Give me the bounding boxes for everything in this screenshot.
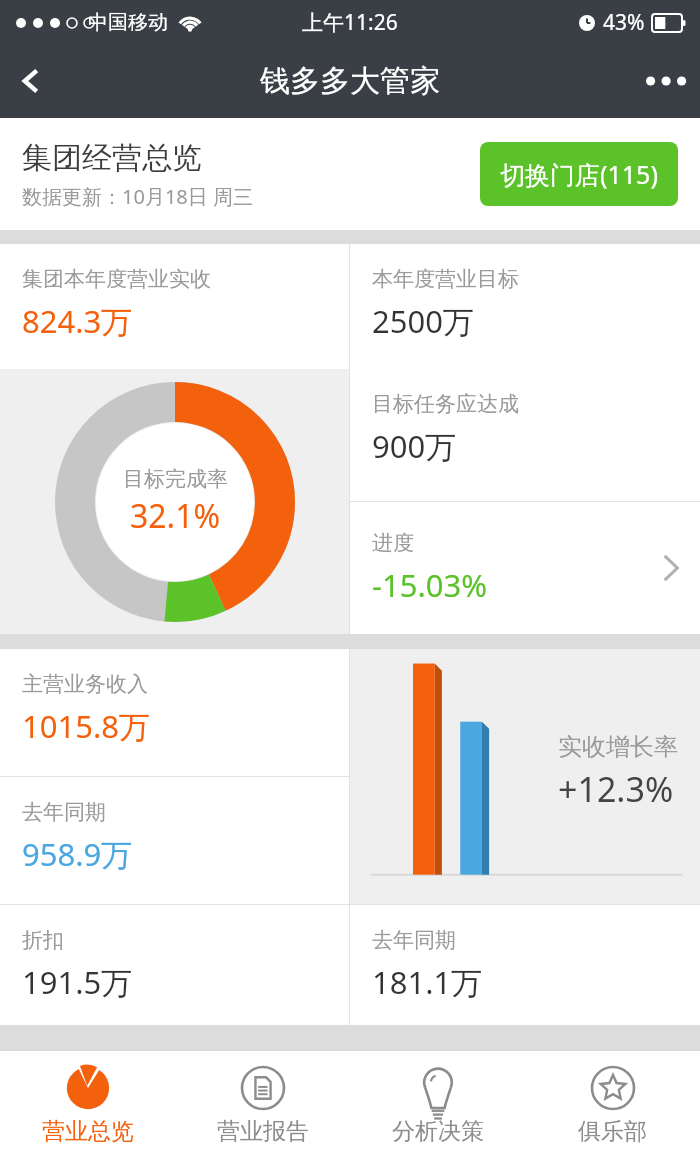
staticText: 进度 <box>372 530 414 556</box>
staticText: 32.1% <box>130 494 221 538</box>
staticText: 上午11:26 <box>302 8 398 37</box>
button[interactable]: 去年同期 <box>0 777 349 904</box>
staticText: 切换门店(115) <box>500 157 658 191</box>
staticText: 数据更新：10月18日 周三 <box>22 183 253 210</box>
staticText: 191.5万 <box>22 961 133 1003</box>
staticText: 181.1万 <box>372 961 483 1003</box>
staticText: 去年同期 <box>22 799 106 825</box>
staticText: 1015.8万 <box>22 705 150 747</box>
staticText: 824.3万 <box>22 300 133 342</box>
button[interactable]: 折扣 <box>0 905 349 1025</box>
staticText: 中国移动 <box>88 10 168 35</box>
button[interactable]: 营业报告 <box>175 1051 350 1163</box>
button[interactable]: 实收增长率 <box>350 649 700 904</box>
button[interactable]: Back <box>0 50 62 112</box>
staticText: 营业总览 <box>42 1117 134 1146</box>
staticText: 主营业务收入 <box>22 671 148 697</box>
staticText: 目标任务应达成 <box>372 391 519 417</box>
button[interactable]: 分析决策 <box>350 1051 525 1163</box>
staticText: +12.3% <box>558 766 674 812</box>
staticText: 900万 <box>372 425 457 467</box>
button[interactable]: 本年度营业目标 <box>350 244 700 369</box>
staticText: 去年同期 <box>372 927 456 953</box>
staticText: 958.9万 <box>22 833 133 875</box>
staticText: 43% <box>603 8 645 37</box>
staticText: 实收增长率 <box>558 732 678 762</box>
button[interactable]: 俱乐部 <box>525 1051 700 1163</box>
button[interactable]: 进度 <box>350 502 700 634</box>
button[interactable]: 目标任务应达成 <box>350 369 700 501</box>
button[interactable]: More options <box>634 48 700 114</box>
staticText: 分析决策 <box>392 1117 484 1146</box>
staticText: -15.03% <box>372 564 487 606</box>
staticText: 集团经营总览 <box>22 139 202 177</box>
staticText: 2500万 <box>372 300 474 342</box>
button[interactable]: 营业总览 <box>0 1051 175 1163</box>
staticText: 集团本年度营业实收 <box>22 266 211 292</box>
staticText: 俱乐部 <box>578 1117 647 1146</box>
staticText: 钱多多大管家 <box>260 62 440 100</box>
button[interactable]: 集团本年度营业实收 <box>0 244 349 369</box>
button[interactable]: 主营业务收入 <box>0 649 349 776</box>
staticText: 目标完成率 <box>123 466 228 492</box>
button[interactable]: 切换门店(115) <box>480 142 678 206</box>
button[interactable]: 目标完成率 <box>0 369 349 634</box>
staticText: 本年度营业目标 <box>372 266 519 292</box>
staticText: 营业报告 <box>217 1117 309 1146</box>
staticText: 折扣 <box>22 927 64 953</box>
button[interactable]: 去年同期 <box>350 905 700 1025</box>
